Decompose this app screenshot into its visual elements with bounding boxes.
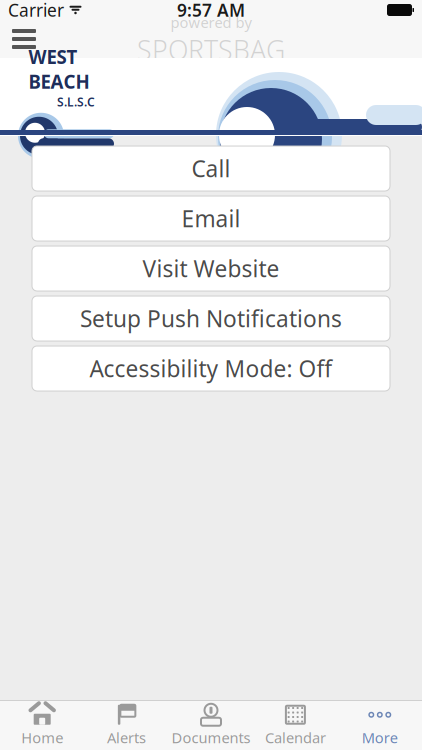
staticText: 9:57 AM bbox=[177, 0, 245, 21]
button[interactable]: More bbox=[338, 701, 422, 750]
staticText: Calendar bbox=[265, 728, 326, 747]
button[interactable]: Calendar bbox=[253, 701, 338, 750]
staticText: WEST BEACH bbox=[28, 44, 89, 94]
staticText: SPORTSBAG bbox=[137, 32, 285, 67]
button[interactable]: Visit Website bbox=[32, 246, 390, 291]
staticText: Call bbox=[191, 153, 230, 183]
staticText: Visit Website bbox=[142, 253, 279, 283]
staticText: Setup Push Notifications bbox=[80, 303, 342, 333]
staticText: Home bbox=[21, 728, 63, 747]
staticText: S.L.S.C bbox=[57, 94, 95, 110]
button[interactable]: Call bbox=[32, 146, 390, 191]
button[interactable]: Accessibility Mode: Off bbox=[32, 346, 390, 391]
staticText: Alerts bbox=[107, 728, 146, 747]
button[interactable]: Documents bbox=[169, 701, 253, 750]
button[interactable]: Menu bbox=[2, 20, 46, 58]
staticText: Accessibility Mode: Off bbox=[89, 353, 332, 383]
staticText: Documents bbox=[171, 728, 250, 747]
staticText: powered by bbox=[170, 13, 251, 32]
staticText: Email bbox=[181, 203, 240, 233]
staticText: More bbox=[362, 728, 398, 747]
button[interactable]: Email bbox=[32, 196, 390, 241]
button[interactable]: Setup Push Notifications bbox=[32, 296, 390, 341]
staticText: Carrier bbox=[8, 0, 64, 21]
button[interactable]: Home bbox=[0, 701, 84, 750]
button[interactable]: Alerts bbox=[84, 701, 169, 750]
